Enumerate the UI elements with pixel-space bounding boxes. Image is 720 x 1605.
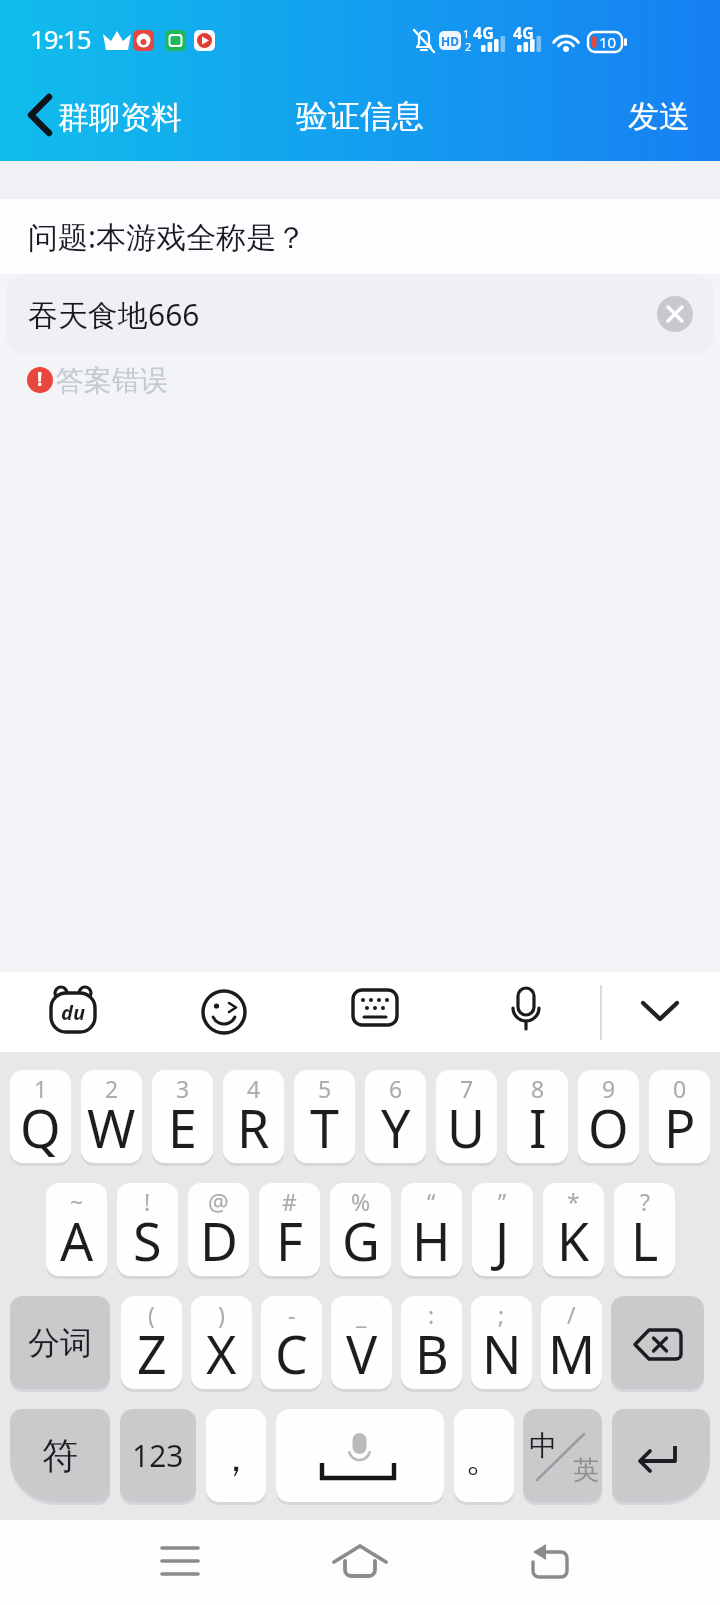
button[interactable]	[330, 1532, 390, 1590]
button[interactable]	[6, 274, 714, 354]
button[interactable]: 5	[294, 1070, 355, 1163]
staticText: 7	[460, 1073, 474, 1104]
button[interactable]: -	[261, 1296, 322, 1389]
staticText: P	[664, 1092, 696, 1163]
staticText: X	[206, 1318, 237, 1389]
button[interactable]	[611, 1296, 704, 1389]
button[interactable]: @	[188, 1183, 249, 1276]
staticText: 123	[132, 1435, 184, 1476]
button[interactable]: 4	[223, 1070, 284, 1163]
staticText: D	[200, 1205, 238, 1276]
button[interactable]: 9	[578, 1070, 639, 1163]
button[interactable]: 6	[365, 1070, 426, 1163]
staticText: “	[427, 1186, 436, 1217]
staticText: U	[447, 1092, 486, 1163]
staticText: 发送	[628, 97, 690, 136]
button[interactable]	[196, 984, 254, 1040]
staticText: ?	[640, 1186, 650, 1217]
button[interactable]	[520, 1532, 580, 1590]
button[interactable]: %	[330, 1183, 391, 1276]
staticText: 8	[531, 1073, 545, 1104]
button[interactable]: ?	[614, 1183, 675, 1276]
staticText: 验证信息	[296, 96, 424, 136]
staticText: 4G	[473, 22, 494, 40]
staticText: 9	[602, 1073, 616, 1104]
staticText: E	[168, 1092, 197, 1163]
staticText: Z	[137, 1318, 167, 1389]
staticText: 符	[42, 1433, 78, 1478]
staticText: L	[631, 1205, 659, 1276]
staticText: 4	[247, 1073, 261, 1104]
button[interactable]: ~	[46, 1183, 107, 1276]
staticText: 5	[318, 1073, 332, 1104]
button[interactable]	[612, 1409, 710, 1502]
button[interactable]	[44, 984, 102, 1040]
button[interactable]: “	[401, 1183, 462, 1276]
staticText: ”	[498, 1186, 507, 1217]
button[interactable]: 8	[507, 1070, 568, 1163]
staticText: S	[133, 1205, 162, 1276]
button[interactable]: 0	[649, 1070, 710, 1163]
staticText: ，	[217, 1434, 255, 1482]
staticText: )	[218, 1299, 225, 1330]
staticText: :	[428, 1299, 435, 1330]
button[interactable]: 123	[120, 1409, 196, 1502]
button[interactable]: !	[117, 1183, 178, 1276]
button[interactable]	[150, 1532, 210, 1590]
button[interactable]: *	[543, 1183, 604, 1276]
button[interactable]: 3	[152, 1070, 213, 1163]
button[interactable]: )	[191, 1296, 252, 1389]
staticText: Y	[381, 1092, 411, 1163]
button[interactable]: ，	[206, 1409, 266, 1502]
button[interactable]: ”	[472, 1183, 533, 1276]
button[interactable]: 发送	[627, 96, 691, 136]
button[interactable]: 1	[10, 1070, 71, 1163]
staticText: J	[495, 1205, 510, 1276]
button[interactable]	[523, 1409, 602, 1502]
staticText: T	[310, 1092, 339, 1163]
button[interactable]: 。	[454, 1409, 514, 1502]
staticText: 中	[529, 1428, 557, 1462]
button[interactable]: 分词	[10, 1296, 110, 1389]
button[interactable]: 7	[436, 1070, 497, 1163]
staticText: G	[342, 1205, 380, 1276]
button[interactable]: 符	[10, 1409, 110, 1502]
button[interactable]: 群聊资料	[58, 98, 208, 134]
button[interactable]: #	[259, 1183, 320, 1276]
button[interactable]	[276, 1409, 444, 1502]
button[interactable]: :	[401, 1296, 462, 1389]
staticText: @	[208, 1186, 229, 1217]
button[interactable]	[630, 984, 690, 1040]
button[interactable]: /	[541, 1296, 602, 1389]
button[interactable]: ;	[471, 1296, 532, 1389]
button[interactable]: 2	[81, 1070, 142, 1163]
staticText: -	[288, 1299, 296, 1330]
staticText: K	[557, 1205, 590, 1276]
button[interactable]	[346, 984, 404, 1040]
staticText: *	[567, 1186, 580, 1217]
staticText: ;	[498, 1299, 505, 1330]
staticText: R	[237, 1092, 270, 1163]
button[interactable]: (	[121, 1296, 182, 1389]
staticText: ~	[70, 1186, 84, 1217]
staticText: 群聊资料	[58, 98, 182, 134]
staticText: O	[588, 1092, 629, 1163]
staticText: _	[356, 1299, 367, 1330]
staticText: 1	[34, 1073, 48, 1104]
staticText: du	[61, 999, 85, 1026]
staticText: 。	[465, 1434, 503, 1482]
button[interactable]	[657, 296, 693, 332]
staticText: F	[276, 1205, 303, 1276]
staticText: 3	[176, 1073, 190, 1104]
staticText: /	[567, 1299, 576, 1330]
staticText: H	[412, 1205, 451, 1276]
staticText: 10	[599, 32, 617, 52]
button[interactable]	[496, 984, 554, 1040]
staticText: A	[60, 1205, 94, 1276]
button[interactable]: _	[331, 1296, 392, 1389]
staticText: I	[529, 1092, 547, 1163]
staticText: 19:15	[30, 21, 91, 49]
staticText: 英	[573, 1454, 599, 1487]
staticText: 6	[389, 1073, 403, 1104]
staticText: C	[275, 1318, 308, 1389]
